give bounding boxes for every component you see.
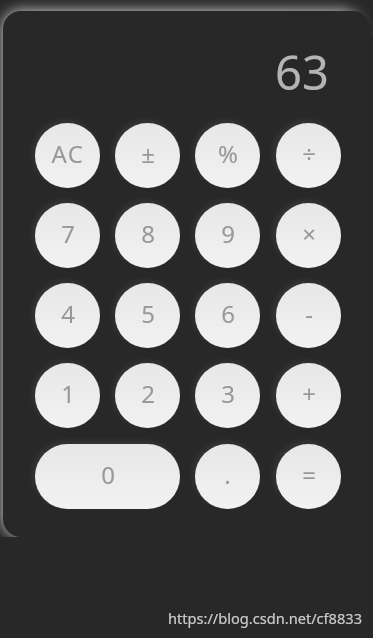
button[interactable]: 7 [35, 203, 100, 268]
button[interactable]: 4 [35, 283, 100, 348]
button[interactable]: plus minus [115, 123, 180, 188]
button[interactable]: multiply [276, 203, 341, 268]
staticText: . [224, 458, 231, 491]
staticText: + [302, 377, 316, 410]
staticText: - [305, 297, 313, 330]
button[interactable]: 9 [195, 203, 260, 268]
staticText: ± [141, 137, 155, 170]
button[interactable]: decimal point [195, 444, 260, 509]
staticText: 2 [141, 377, 155, 410]
button[interactable]: 8 [115, 203, 180, 268]
button[interactable]: plus [276, 363, 341, 428]
button[interactable]: 2 [115, 363, 180, 428]
staticText: 4 [61, 297, 75, 330]
staticText: 8 [141, 217, 155, 250]
button[interactable]: percent [195, 123, 260, 188]
staticText: 63 [275, 40, 329, 104]
button[interactable]: 1 [35, 363, 100, 428]
button[interactable]: equals [276, 444, 341, 509]
staticText: 9 [221, 217, 235, 250]
staticText: × [302, 217, 316, 250]
staticText: % [218, 137, 238, 170]
staticText: = [302, 458, 316, 491]
button[interactable]: minus [276, 283, 341, 348]
button[interactable]: 0 [35, 444, 180, 509]
staticText: 7 [61, 217, 75, 250]
staticText: AC [51, 137, 85, 170]
button[interactable]: divide [276, 123, 341, 188]
button[interactable]: 5 [115, 283, 180, 348]
staticText: 5 [141, 297, 155, 330]
button[interactable]: 6 [195, 283, 260, 348]
staticText: 3 [221, 377, 235, 410]
button[interactable]: 3 [195, 363, 260, 428]
staticText: 0 [101, 458, 115, 491]
staticText: 6 [221, 297, 235, 330]
staticText: ÷ [302, 137, 316, 170]
button[interactable]: AC [35, 123, 100, 188]
staticText: https://blog.csdn.net/cf8833 [168, 608, 363, 628]
staticText: 1 [61, 377, 75, 410]
